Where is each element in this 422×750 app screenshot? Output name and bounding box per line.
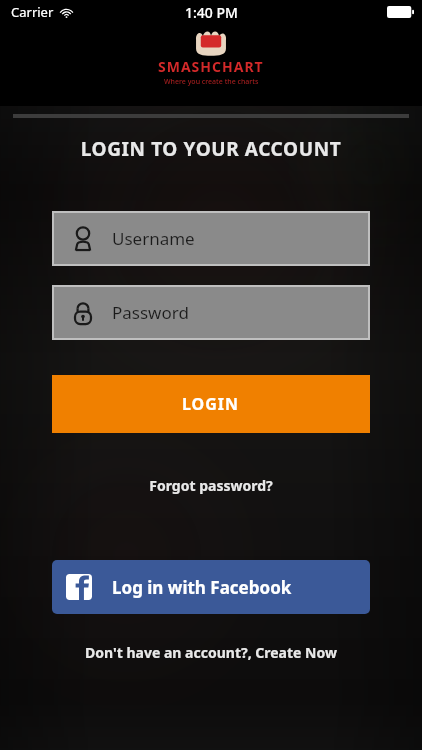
staticText: Carrier [11,3,54,21]
staticText: 1:40 PM [185,3,238,22]
staticText: Username [112,227,195,250]
staticText: Password [112,301,189,324]
button[interactable]: Don't have an account?, Create Now [0,643,422,662]
button[interactable]: Password [54,287,368,338]
staticText: Where you create the charts [164,77,259,87]
staticText: LOGIN [182,393,240,415]
button[interactable]: Log in with Facebook [52,560,370,614]
staticText: Log in with Facebook [112,576,292,599]
staticText: SMASHCHART [158,57,264,76]
button[interactable]: Username [54,213,368,264]
staticText: LOGIN TO YOUR ACCOUNT [0,136,422,162]
button[interactable]: Forgot password? [0,476,422,495]
button[interactable]: LOGIN [52,375,370,433]
